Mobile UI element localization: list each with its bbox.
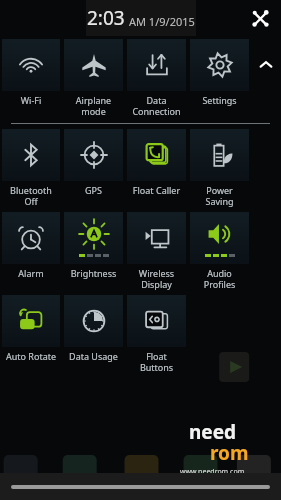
- button[interactable]: Wi-Fi: [2, 39, 60, 106]
- staticText: rom: [210, 440, 249, 466]
- button[interactable]: Wireless Display: [127, 212, 186, 290]
- button[interactable]: Auto Rotate: [2, 295, 60, 362]
- staticText: 2:03: [87, 5, 125, 31]
- button[interactable]: Edit quick settings: [247, 5, 273, 31]
- button[interactable]: Bluetooth Off: [2, 129, 60, 207]
- button[interactable]: Alarm: [2, 212, 60, 279]
- staticText: Data Usage: [64, 350, 123, 362]
- button[interactable]: [11, 485, 270, 489]
- button[interactable]: Float Buttons: [127, 295, 186, 373]
- button[interactable]: Brightness: [64, 212, 123, 279]
- staticText: Brightness: [64, 267, 123, 279]
- button[interactable]: Data Usage: [64, 295, 123, 362]
- button[interactable]: Audio Profiles: [190, 212, 249, 290]
- staticText: Wireless Display: [127, 267, 186, 290]
- staticText: Power Saving: [190, 184, 249, 207]
- staticText: Float Caller: [127, 184, 186, 196]
- staticText: Float Buttons: [127, 350, 186, 373]
- button[interactable]: Data Connection: [127, 39, 186, 117]
- button[interactable]: Power Saving: [190, 129, 249, 207]
- button[interactable]: GPS: [64, 129, 123, 196]
- staticText: Wi-Fi: [2, 94, 60, 106]
- staticText: Settings: [190, 94, 249, 106]
- staticText: www.needrom.com: [180, 467, 245, 477]
- staticText: Auto Rotate: [2, 350, 60, 362]
- staticText: AM 1/9/2015: [129, 14, 195, 29]
- staticText: GPS: [64, 184, 123, 196]
- staticText: Airplane mode: [64, 94, 123, 117]
- staticText: Bluetooth Off: [2, 184, 60, 207]
- staticText: Audio Profiles: [190, 267, 249, 290]
- button[interactable]: Collapse: [251, 39, 281, 91]
- staticText: Alarm: [2, 267, 60, 279]
- button[interactable]: Airplane mode: [64, 39, 123, 117]
- button[interactable]: Settings: [190, 39, 249, 106]
- staticText: Data Connection: [127, 94, 186, 117]
- staticText: need: [189, 419, 237, 445]
- button[interactable]: Float Caller: [127, 129, 186, 196]
